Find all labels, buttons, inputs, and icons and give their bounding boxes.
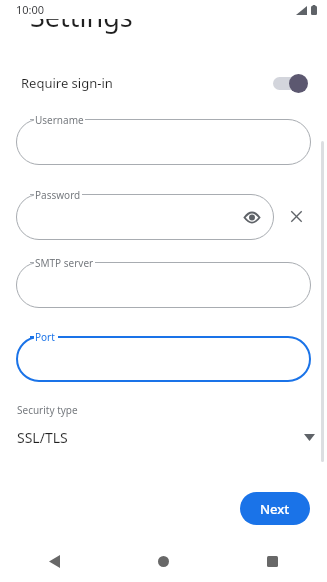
button[interactable]: Require sign-in toggle	[272, 73, 308, 93]
button[interactable]: Require sign-in	[0, 66, 327, 100]
button[interactable]: Home	[109, 541, 218, 582]
button[interactable]: Clear password	[283, 203, 310, 230]
staticText: Next	[260, 500, 290, 518]
staticText: Require sign-in	[21, 74, 113, 92]
button[interactable]: Password	[16, 194, 274, 240]
button[interactable]: Security type	[0, 399, 327, 453]
button[interactable]: Next	[240, 492, 310, 525]
staticText: SSL/TLS	[17, 428, 68, 447]
staticText: Port	[35, 330, 55, 344]
button[interactable]: Recent apps	[218, 541, 327, 582]
button[interactable]: Back	[0, 541, 109, 582]
staticText: Security type	[17, 403, 78, 417]
button[interactable]: SMTP server	[16, 262, 311, 308]
staticText: SMTP server	[35, 256, 94, 270]
staticText: Settings	[30, 0, 133, 35]
button[interactable]: Username	[16, 119, 311, 165]
staticText: Password	[35, 188, 81, 202]
staticText: 10:00	[16, 2, 45, 17]
button[interactable]: Show password	[240, 205, 264, 229]
button[interactable]: Port	[16, 336, 311, 382]
staticText: Username	[35, 113, 84, 127]
